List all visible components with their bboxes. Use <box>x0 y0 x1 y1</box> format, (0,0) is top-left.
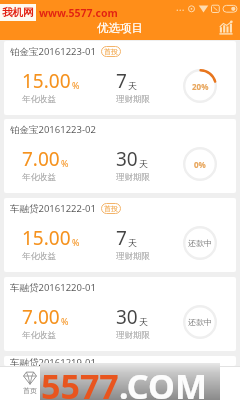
staticText: 7 <box>116 225 127 251</box>
button[interactable]: 统计 <box>212 16 240 40</box>
staticText: 理财期限 <box>116 330 150 341</box>
button[interactable]: 发现 <box>120 366 180 400</box>
staticText: 首投 <box>104 47 118 56</box>
staticText: 还款中 <box>188 238 212 248</box>
button[interactable]: 铂金宝20161223-01 <box>4 41 236 115</box>
staticText: www.5577.com <box>39 6 118 20</box>
staticText: 铂金宝20161223-02 <box>10 123 96 136</box>
staticText: 铂金宝20161223-01 <box>10 45 96 58</box>
staticText: 年化收益 <box>22 330 56 341</box>
staticText: 发现 <box>143 386 157 395</box>
staticText: 15.00 <box>22 68 71 94</box>
staticText: 30 <box>116 146 138 172</box>
button[interactable]: 车融贷20161222-01 <box>4 198 236 272</box>
staticText: 年化收益 <box>22 172 56 183</box>
staticText: 7 <box>116 68 127 94</box>
staticText: 7.00 <box>22 304 60 330</box>
staticText: 我的 <box>203 386 217 395</box>
staticText: 20% <box>192 81 209 92</box>
staticText: 还款中 <box>188 317 212 327</box>
staticText: 首页 <box>23 386 37 395</box>
button[interactable]: 我的 <box>180 366 240 400</box>
staticText: 理财期限 <box>116 172 150 183</box>
staticText: 车融贷20161222-01 <box>10 202 96 215</box>
staticText: 优选项目 <box>97 21 143 35</box>
staticText: % <box>72 79 80 91</box>
staticText: 15.00 <box>22 225 71 251</box>
staticText: 年化收益 <box>22 94 56 105</box>
staticText: .COM <box>119 363 207 399</box>
staticText: 年化收益 <box>22 251 56 262</box>
staticText: 7.00 <box>22 146 60 172</box>
staticText: 5577 <box>41 363 119 399</box>
staticText: 我机网 <box>2 6 34 19</box>
staticText: 理财期限 <box>116 251 150 262</box>
staticText: 天 <box>139 316 148 327</box>
staticText: 天 <box>128 80 137 91</box>
staticText: % <box>72 236 80 248</box>
staticText: % <box>61 157 69 169</box>
staticText: 车融贷20161220-01 <box>10 281 96 294</box>
staticText: % <box>61 315 69 327</box>
staticText: 天 <box>139 158 148 169</box>
staticText: 理财 <box>83 386 97 395</box>
button[interactable]: 理财 <box>60 366 120 400</box>
button[interactable]: 铂金宝20161223-02 <box>4 119 236 193</box>
button[interactable]: 车融贷20161220-01 <box>4 277 236 351</box>
button[interactable]: 车融贷20161219-01 <box>4 356 236 366</box>
staticText: 天 <box>128 237 137 248</box>
staticText: 30 <box>116 304 138 330</box>
staticText: 理财期限 <box>116 94 150 105</box>
staticText: 车融贷20161219-01 <box>10 356 96 366</box>
staticText: 首投 <box>104 204 118 213</box>
button[interactable]: 首页 <box>0 366 60 400</box>
staticText: 0% <box>194 159 206 170</box>
